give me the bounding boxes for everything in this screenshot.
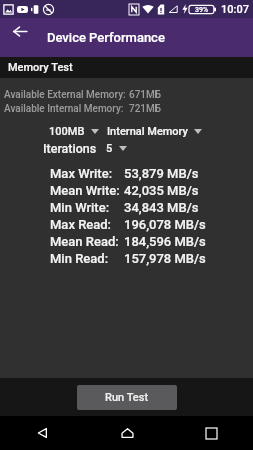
staticText: Min Read: xyxy=(50,251,109,266)
staticText: 10:07 xyxy=(221,3,249,16)
button[interactable]: Home xyxy=(85,416,169,450)
staticText: 196,078 MB/s xyxy=(124,217,206,232)
staticText: Min Write: xyxy=(50,200,110,215)
staticText: 39% xyxy=(195,6,209,14)
staticText: 671МБ xyxy=(129,89,162,101)
staticText: Device Performance xyxy=(47,30,165,45)
staticText: Mean Write: xyxy=(50,183,120,198)
staticText: 5 xyxy=(106,142,113,155)
staticText: Max Read: xyxy=(50,217,112,232)
button[interactable]: Back xyxy=(7,18,33,44)
button[interactable]: Internal Memory xyxy=(107,125,202,138)
staticText: 34,843 MB/s xyxy=(124,200,199,215)
staticText: 157,978 MB/s xyxy=(124,251,206,266)
button[interactable]: 5 xyxy=(106,142,127,155)
button[interactable]: Run Test xyxy=(77,385,177,410)
staticText: 100MB xyxy=(49,125,85,138)
staticText: Max Write: xyxy=(50,166,113,181)
staticText: 184,596 MB/s xyxy=(124,234,206,249)
staticText: Iterations xyxy=(43,141,97,156)
button[interactable]: Recent apps xyxy=(169,416,253,450)
button[interactable]: Back xyxy=(0,416,85,450)
staticText: Available Internal Memory: xyxy=(4,103,124,115)
button[interactable]: 100MB xyxy=(49,125,99,138)
staticText: 721МБ xyxy=(129,103,162,115)
staticText: 53,879 MB/s xyxy=(124,166,199,181)
staticText: Run Test xyxy=(105,391,149,404)
staticText: 42,035 MB/s xyxy=(124,183,199,198)
staticText: Available External Memory: xyxy=(4,89,126,101)
staticText: Mean Read: xyxy=(50,234,119,249)
staticText: Memory Test xyxy=(8,61,73,74)
staticText: Internal Memory xyxy=(107,125,188,138)
